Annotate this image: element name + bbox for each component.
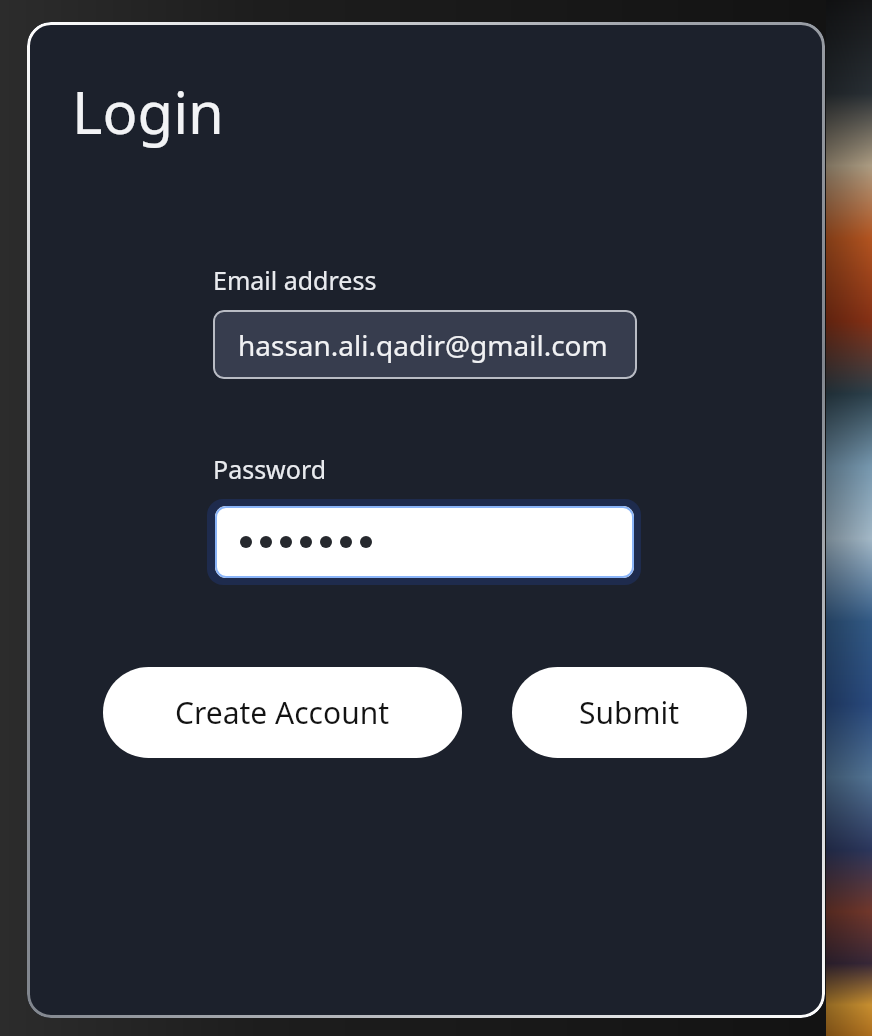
button[interactable] (207, 499, 641, 585)
button[interactable]: hassan.ali.qadir@gmail.com (213, 310, 637, 379)
staticText: Login (72, 72, 224, 151)
staticText: Submit (579, 692, 680, 733)
staticText: Password (213, 452, 327, 486)
button[interactable]: Create Account (103, 667, 462, 758)
staticText: hassan.ali.qadir@gmail.com (238, 326, 608, 364)
staticText: Create Account (175, 692, 390, 733)
button[interactable]: Submit (512, 667, 747, 758)
staticText: Email address (213, 263, 377, 297)
